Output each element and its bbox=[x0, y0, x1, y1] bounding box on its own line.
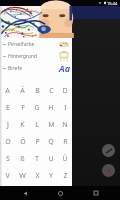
button[interactable]: Hintergrund bbox=[0, 50, 72, 62]
button[interactable]: E bbox=[0, 99, 15, 116]
staticText: U bbox=[48, 154, 54, 164]
staticText: H bbox=[48, 103, 54, 113]
button[interactable]: I bbox=[58, 99, 72, 116]
staticText: E bbox=[6, 103, 10, 113]
button[interactable]: G bbox=[30, 99, 44, 116]
staticText: X bbox=[35, 171, 40, 181]
staticText: Ö bbox=[20, 137, 26, 147]
staticText: W bbox=[19, 171, 26, 181]
staticText: N bbox=[62, 120, 68, 130]
staticText: I bbox=[64, 103, 67, 113]
button[interactable]: X bbox=[30, 167, 44, 184]
button[interactable]: L bbox=[30, 116, 44, 133]
staticText: D bbox=[62, 86, 68, 96]
button[interactable]: F bbox=[15, 99, 30, 116]
staticText: Aa bbox=[59, 62, 70, 74]
staticText: Z bbox=[63, 171, 68, 181]
button[interactable]: Home bbox=[49, 186, 71, 200]
button[interactable]: Pinselfarbe bbox=[0, 38, 72, 50]
button[interactable]: Ä bbox=[15, 82, 30, 99]
staticText: Y bbox=[49, 171, 53, 181]
staticText: L bbox=[35, 120, 39, 130]
staticText: Q bbox=[48, 137, 54, 147]
button[interactable]: Z bbox=[58, 167, 72, 184]
button[interactable]: Ü bbox=[58, 150, 72, 167]
staticText: 15:44 bbox=[107, 1, 118, 6]
staticText: Briefe bbox=[8, 65, 22, 72]
button[interactable]: B bbox=[30, 82, 44, 99]
staticText: A bbox=[5, 86, 10, 96]
button[interactable]: M bbox=[44, 116, 58, 133]
button[interactable]: A bbox=[0, 82, 15, 99]
button[interactable]: N bbox=[58, 116, 72, 133]
staticText: B bbox=[35, 86, 40, 96]
staticText: T bbox=[35, 154, 39, 164]
button[interactable]: J bbox=[0, 116, 15, 133]
staticText: F bbox=[21, 103, 25, 113]
staticText: V bbox=[5, 171, 10, 181]
button[interactable]: Close bbox=[102, 164, 115, 177]
staticText: ß bbox=[20, 154, 25, 164]
button[interactable]: ß bbox=[15, 150, 30, 167]
button[interactable]: Ö bbox=[15, 133, 30, 150]
button[interactable]: Briefe bbox=[0, 62, 72, 74]
staticText: M bbox=[48, 120, 55, 130]
button[interactable]: W bbox=[15, 167, 30, 184]
button[interactable]: D bbox=[58, 82, 72, 99]
button[interactable]: P bbox=[30, 133, 44, 150]
staticText: Pinselfarbe bbox=[8, 41, 35, 48]
staticText: C bbox=[49, 86, 54, 96]
button[interactable]: O bbox=[0, 133, 15, 150]
staticText: G bbox=[34, 103, 40, 113]
button[interactable]: Brush bbox=[102, 144, 115, 157]
staticText: P bbox=[35, 137, 40, 147]
staticText: Ä bbox=[20, 86, 25, 96]
button[interactable]: S bbox=[0, 150, 15, 167]
staticText: J bbox=[7, 120, 9, 130]
button[interactable]: C bbox=[44, 82, 58, 99]
staticText: Ü bbox=[62, 154, 68, 164]
button[interactable]: R bbox=[58, 133, 72, 150]
button[interactable]: T bbox=[30, 150, 44, 167]
staticText: K bbox=[20, 120, 25, 130]
button[interactable]: H bbox=[44, 99, 58, 116]
staticText: Hintergrund bbox=[8, 53, 38, 60]
button[interactable]: V bbox=[0, 167, 15, 184]
button[interactable]: K bbox=[15, 116, 30, 133]
staticText: S bbox=[6, 154, 10, 164]
staticText: O bbox=[5, 137, 11, 147]
button[interactable]: Q bbox=[44, 133, 58, 150]
button[interactable]: Recents bbox=[85, 186, 107, 200]
button[interactable]: U bbox=[44, 150, 58, 167]
button[interactable]: Back bbox=[14, 186, 36, 200]
button[interactable]: Y bbox=[44, 167, 58, 184]
staticText: R bbox=[63, 137, 68, 147]
